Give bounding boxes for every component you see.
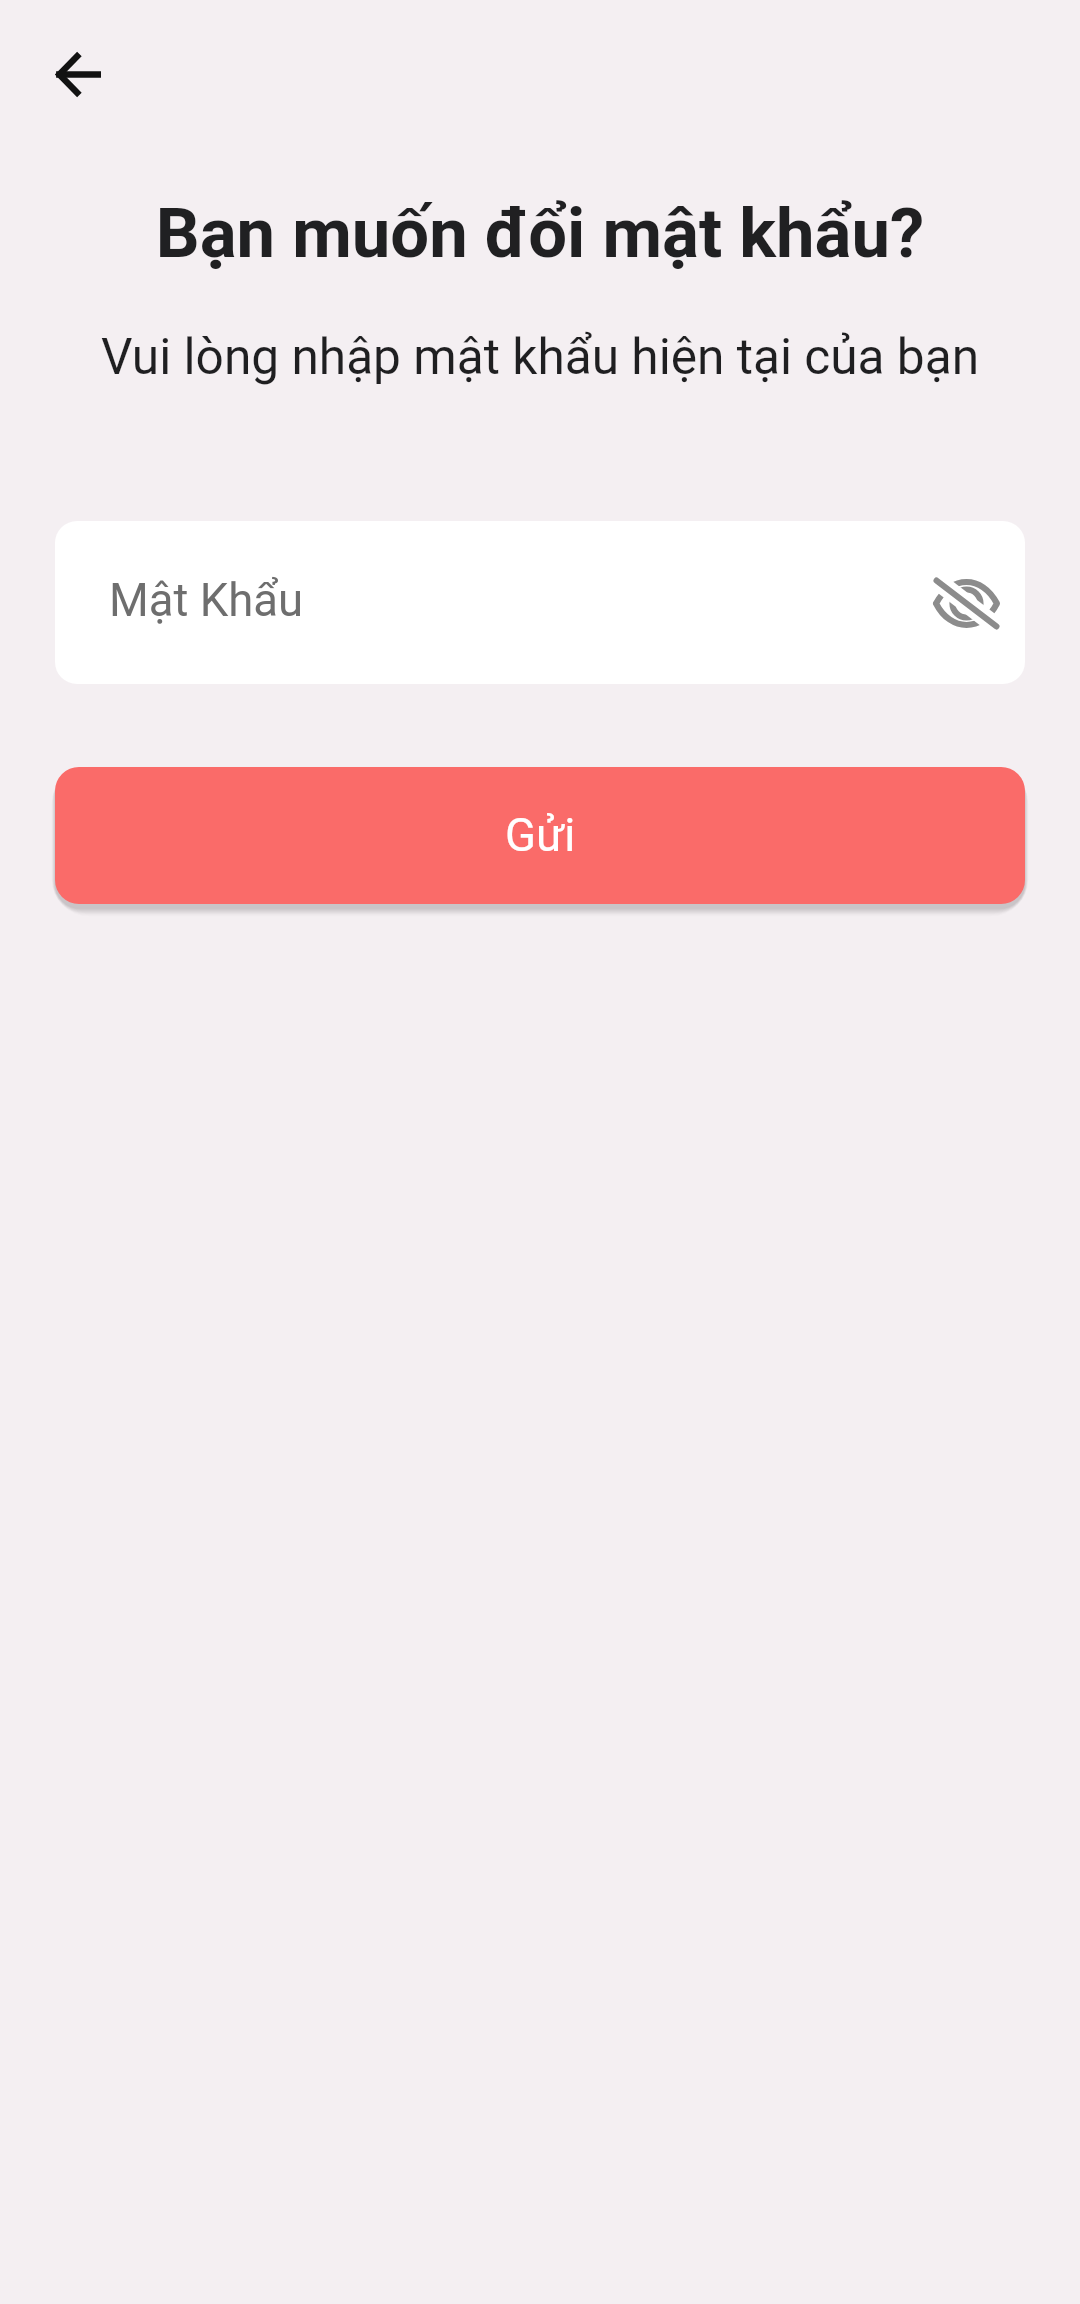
staticText: Mật Khẩu <box>109 574 304 627</box>
button[interactable]: Gửi <box>55 767 1025 904</box>
staticText: Vui lòng nhập mật khẩu hiện tại của bạn <box>0 328 1080 386</box>
staticText: Gửi <box>505 809 576 862</box>
button[interactable]: Mật Khẩu <box>55 521 1025 684</box>
button[interactable]: Show password <box>925 562 1007 644</box>
staticText: Bạn muốn đổi mật khẩu? <box>0 193 1080 274</box>
button[interactable]: Back <box>33 29 124 120</box>
